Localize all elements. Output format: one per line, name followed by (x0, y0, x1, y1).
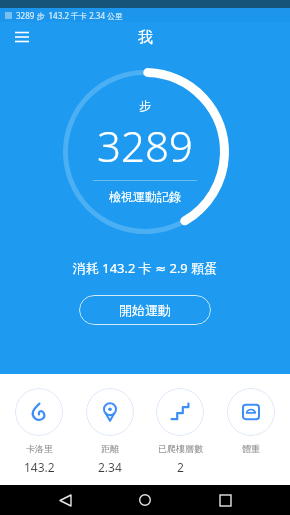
staticText: 我 (138, 28, 153, 47)
staticText: 143.2 (24, 459, 55, 475)
button[interactable]: Menu (8, 23, 36, 51)
staticText: 2.34 (98, 459, 122, 475)
button[interactable]: Calories (8, 388, 70, 475)
staticText: 已爬樓層數 (158, 443, 203, 454)
button[interactable]: 檢視運動記錄 (105, 188, 185, 205)
staticText: 檢視運動記錄 (109, 189, 181, 204)
button[interactable]: Distance (79, 388, 141, 475)
staticText: 步 (139, 98, 151, 113)
staticText: 開始運動 (119, 302, 171, 318)
staticText: 消耗 143.2 卡 ≈ 2.9 顆蛋 (0, 259, 290, 277)
button[interactable]: Recents (210, 485, 240, 515)
staticText: 2 (177, 459, 184, 475)
staticText: 距離 (101, 443, 119, 454)
staticText: 3289 步 143.2 千卡 2.34 公里 (16, 10, 124, 21)
button[interactable]: Home (130, 485, 160, 515)
button[interactable]: Back (50, 485, 80, 515)
button[interactable]: 開始運動 (79, 295, 211, 325)
button[interactable]: Weight (220, 388, 282, 459)
staticText: 3289 (97, 117, 193, 174)
staticText: 卡洛里 (26, 443, 53, 454)
button[interactable]: Floors (149, 388, 211, 475)
staticText: 體重 (242, 443, 260, 454)
